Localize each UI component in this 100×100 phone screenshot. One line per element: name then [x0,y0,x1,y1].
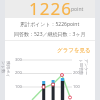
staticText: 100 [15,84,22,89]
staticText: アンケート回答数 [79,59,89,79]
staticText: point [71,6,84,13]
button[interactable]: グラフを見る [57,47,91,54]
staticText: グラフを見る [57,47,91,54]
staticText: 1226 [29,0,72,20]
staticText: 回答数：523／継続日数：3ヶ月 [14,31,86,38]
staticText: 200 [73,70,80,75]
staticText: 100 [73,84,80,89]
staticText: 累計ポイント：5226point [20,21,80,28]
staticText: 300 [15,57,22,62]
staticText: 獲得ポイント数 [1,61,11,81]
staticText: 200 [15,70,22,75]
